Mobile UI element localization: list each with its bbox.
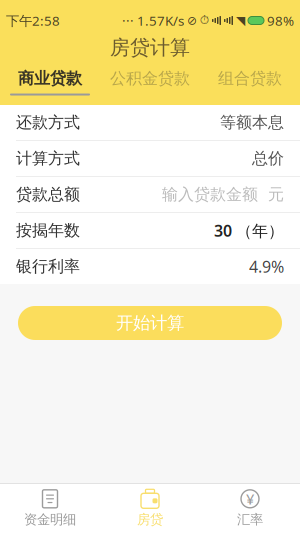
- staticText: 房贷计算: [110, 35, 190, 60]
- staticText: 输入贷款金额 元: [162, 185, 284, 204]
- staticText: 汇率: [237, 511, 263, 528]
- staticText: 总价: [252, 149, 284, 168]
- button[interactable]: 开始计算: [18, 306, 282, 340]
- staticText: 1.57K/s: [137, 12, 184, 29]
- button[interactable]: 房贷: [100, 484, 200, 533]
- button[interactable]: 组合贷款: [200, 63, 300, 95]
- button[interactable]: 商业贷款: [0, 63, 100, 95]
- staticText: 组合贷款: [218, 69, 282, 88]
- staticText: ¥: [246, 489, 254, 509]
- button[interactable]: 银行利率: [0, 249, 300, 284]
- button[interactable]: 按揭年数: [0, 213, 300, 249]
- staticText: 银行利率: [16, 257, 80, 276]
- button[interactable]: 贷款总额: [0, 177, 300, 213]
- button[interactable]: 资金明细: [0, 484, 100, 533]
- staticText: 计算方式: [16, 149, 80, 168]
- staticText: 等额本息: [220, 113, 284, 132]
- button[interactable]: ¥: [200, 484, 300, 533]
- button[interactable]: 计算方式: [0, 141, 300, 177]
- staticText: 30 （年）: [214, 220, 284, 241]
- staticText: ◥: [236, 14, 245, 27]
- staticText: 房贷: [137, 511, 163, 528]
- staticText: ⊘: [187, 14, 197, 27]
- staticText: 98%: [267, 12, 294, 29]
- staticText: ···: [122, 12, 134, 29]
- staticText: 开始计算: [116, 312, 184, 334]
- button[interactable]: 公积金贷款: [100, 63, 200, 95]
- staticText: ⏱: [200, 15, 209, 26]
- staticText: 按揭年数: [16, 221, 80, 240]
- button[interactable]: 还款方式: [0, 105, 300, 141]
- staticText: 商业贷款: [18, 69, 82, 88]
- staticText: 贷款总额: [16, 185, 80, 204]
- staticText: 4.9%: [249, 256, 284, 277]
- staticText: 公积金贷款: [110, 69, 190, 88]
- staticText: 还款方式: [16, 113, 80, 132]
- staticText: 下午2:58: [6, 12, 60, 29]
- staticText: 资金明细: [24, 511, 76, 528]
